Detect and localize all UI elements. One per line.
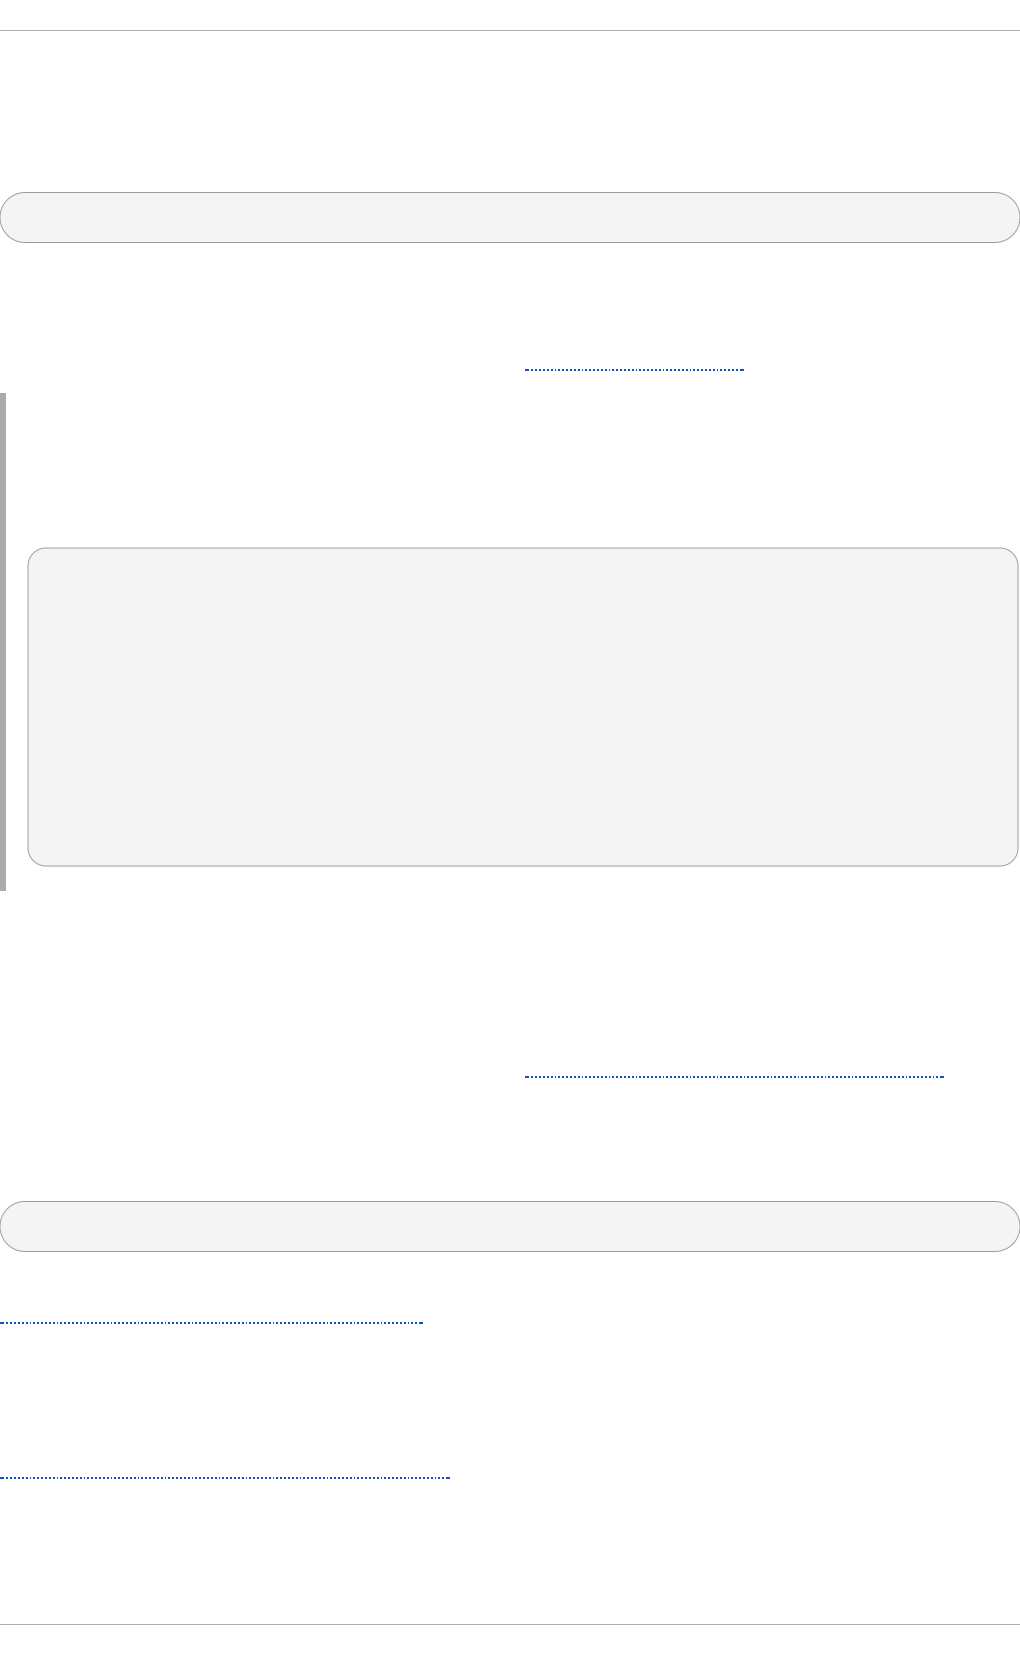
- button[interactable]: Documentation link: [525, 1054, 959, 1078]
- button[interactable]: Search: [0, 192, 1020, 242]
- button[interactable]: See also: [0, 1455, 466, 1479]
- button[interactable]: Related article: [0, 1300, 437, 1324]
- button[interactable]: Reference link: [525, 347, 752, 371]
- button[interactable]: Filter: [0, 1201, 1020, 1251]
